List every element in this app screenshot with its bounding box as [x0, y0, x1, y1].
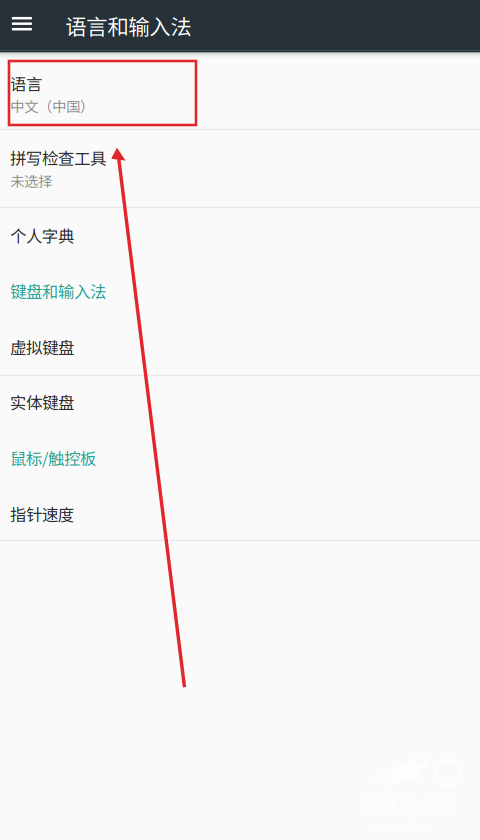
button[interactable]: 个人字典 — [0, 208, 480, 263]
staticText: 实体键盘 — [10, 390, 74, 414]
button[interactable]: 实体键盘 — [0, 376, 480, 428]
staticText: 鼠标/触控板 — [10, 446, 96, 470]
staticText: 未选择 — [10, 170, 52, 191]
button[interactable]: 鼠标/触控板 — [0, 428, 480, 488]
staticText: 个人字典 — [10, 223, 74, 247]
staticText: 指针速度 — [10, 502, 74, 526]
staticText: 键盘和输入法 — [10, 279, 106, 303]
button[interactable]: 拼写检查工具 — [0, 130, 480, 207]
staticText: 拼写检查工具 — [10, 146, 106, 169]
button[interactable]: 键盘和输入法 — [0, 263, 480, 319]
staticText: 虚拟键盘 — [10, 335, 74, 359]
staticText: 语言和输入法 — [65, 10, 191, 41]
button[interactable]: 虚拟键盘 — [0, 319, 480, 375]
button[interactable]: 指针速度 — [0, 488, 480, 540]
staticText: 语言 — [10, 71, 42, 95]
button[interactable]: 语言 — [0, 58, 480, 129]
staticText: 中文（中国） — [10, 95, 94, 116]
button[interactable]: Menu — [1, 0, 43, 51]
